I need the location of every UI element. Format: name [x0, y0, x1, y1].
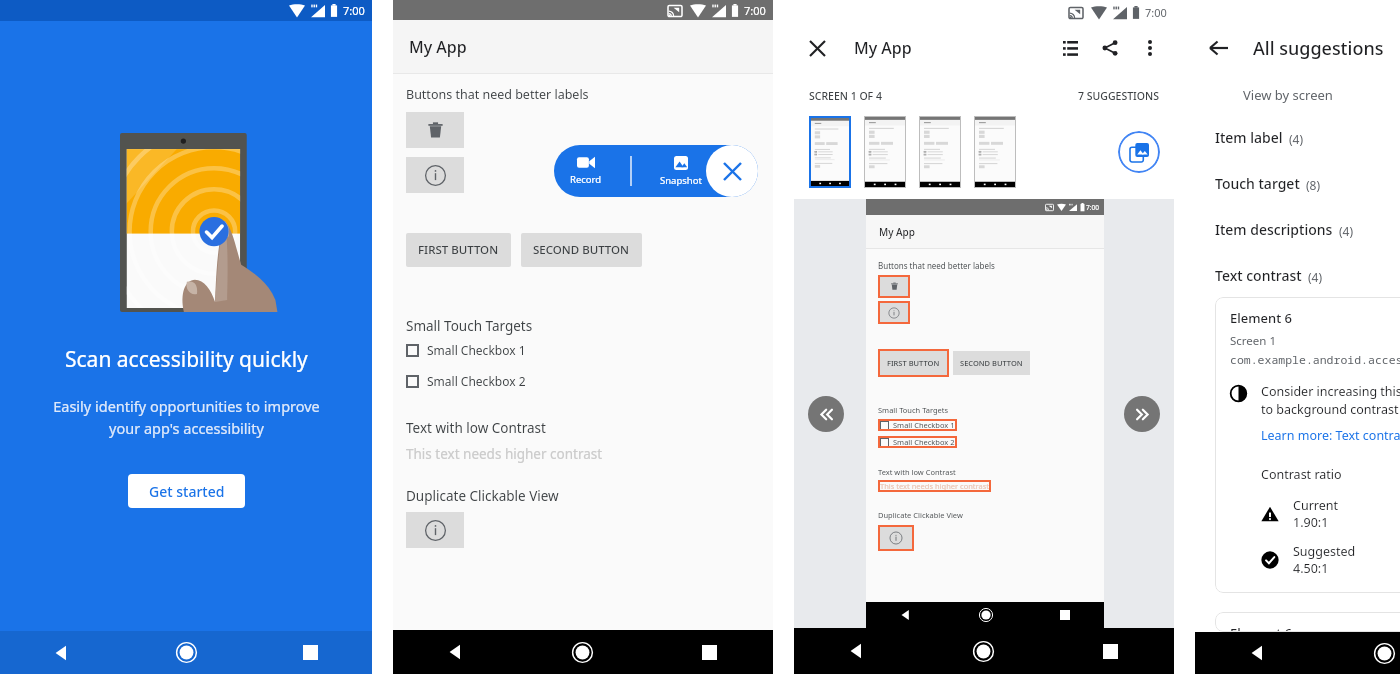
staticText: My App	[879, 225, 916, 239]
staticText: FIRST BUTTON	[418, 242, 499, 258]
staticText: com.example.android.accessibility	[1230, 352, 1400, 368]
staticText: All suggestions	[1253, 36, 1384, 61]
staticText: Contrast ratio	[1261, 466, 1342, 483]
staticText: (4)	[1289, 131, 1304, 147]
button[interactable]: Recents	[1047, 628, 1174, 674]
button[interactable]: Small Checkbox 1	[406, 342, 526, 358]
staticText: Small Checkbox 1	[427, 342, 526, 358]
staticText: Small Touch Targets	[878, 405, 949, 415]
staticText: Touch target	[1215, 174, 1300, 193]
button[interactable]: Share	[1090, 28, 1130, 68]
staticText: Text with low Contrast	[878, 467, 956, 477]
button[interactable]: Next	[1124, 396, 1160, 432]
button[interactable]: List view	[1050, 28, 1090, 68]
button[interactable]: Screen thumbnail	[809, 116, 851, 188]
button[interactable]: Home	[946, 602, 1025, 628]
staticText: Small Touch Targets	[406, 317, 533, 335]
button[interactable]: Action	[406, 512, 464, 548]
staticText: Snapshot	[660, 174, 702, 187]
button[interactable]: More options	[1130, 28, 1170, 68]
button[interactable]: Small Checkbox 2	[406, 373, 526, 389]
button[interactable]: Back	[1195, 632, 1321, 674]
staticText: 1.90:1	[1293, 514, 1329, 531]
staticText: 4.50:1	[1293, 560, 1329, 577]
button[interactable]: Home	[124, 631, 248, 674]
button[interactable]: Previous	[808, 396, 844, 432]
staticText: Learn more: Text contrast	[1261, 427, 1400, 444]
staticText: Text with low Contrast	[406, 419, 546, 437]
staticText: FIRST BUTTON	[887, 358, 940, 368]
staticText: This text needs higher contrast	[406, 445, 603, 463]
button[interactable]: Recents	[248, 631, 372, 674]
button[interactable]: Close	[706, 145, 758, 197]
button[interactable]: Gallery	[1118, 131, 1160, 173]
button[interactable]: Back	[866, 602, 946, 628]
staticText: Duplicate Clickable View	[878, 510, 963, 520]
button[interactable]: Back	[1195, 24, 1243, 72]
staticText: Item label	[1215, 128, 1283, 147]
staticText: 7:00	[343, 3, 365, 18]
staticText: Small Checkbox 2	[893, 437, 955, 447]
button[interactable]: Record	[554, 145, 758, 197]
staticText: Text contrast	[1215, 266, 1302, 285]
button[interactable]: Element 6	[1215, 612, 1400, 632]
button[interactable]: Action	[406, 157, 464, 193]
staticText: Current	[1293, 497, 1338, 514]
button[interactable]: SECOND BUTTON	[521, 233, 642, 267]
staticText: (4)	[1308, 269, 1323, 285]
button[interactable]: Recents	[1025, 602, 1104, 628]
button[interactable]: View by screen	[1243, 86, 1333, 104]
button[interactable]: Back	[794, 628, 920, 674]
staticText: My App	[409, 36, 467, 58]
button[interactable]: Text contrast	[1195, 266, 1400, 285]
staticText: My App	[854, 37, 912, 59]
staticText: SECOND BUTTON	[960, 358, 1023, 368]
staticText: 7:00	[1145, 5, 1167, 20]
staticText: Element 6	[1230, 309, 1292, 327]
button[interactable]: Element 6	[1215, 297, 1400, 593]
staticText: SECOND BUTTON	[533, 242, 630, 258]
staticText: Small Checkbox 2	[427, 373, 526, 389]
staticText: Consider increasing this item's text to …	[1261, 383, 1400, 418]
button[interactable]: Get started	[128, 474, 245, 508]
staticText: (4)	[1339, 223, 1354, 239]
button[interactable]: Back	[393, 630, 519, 674]
staticText: 7:00	[744, 3, 766, 18]
button[interactable]: Item label	[1195, 128, 1400, 147]
staticText: Duplicate Clickable View	[406, 487, 559, 505]
button[interactable]: Recents	[646, 630, 773, 674]
button[interactable]: Screen thumbnail	[864, 116, 906, 188]
staticText: Small Checkbox 1	[893, 420, 955, 430]
button[interactable]: Close	[794, 25, 840, 71]
button[interactable]: Home	[920, 628, 1047, 674]
staticText: Suggested	[1293, 543, 1356, 560]
button[interactable]: Touch target	[1195, 174, 1400, 193]
button[interactable]: Action	[406, 112, 464, 148]
staticText: Item descriptions	[1215, 220, 1333, 239]
staticText: This text needs higher contrast	[880, 481, 989, 491]
button[interactable]: Item descriptions	[1195, 220, 1400, 239]
staticText: 7 SUGGESTIONS	[1078, 89, 1159, 103]
staticText: Get started	[149, 482, 225, 501]
staticText: Screen 1	[1230, 333, 1276, 349]
staticText: Element 6	[1230, 624, 1292, 632]
staticText: Scan accessibility quickly	[65, 345, 308, 374]
button[interactable]: Home	[519, 630, 646, 674]
staticText: (8)	[1306, 177, 1321, 193]
staticText: Buttons that need better labels	[406, 86, 589, 103]
button[interactable]: Screen thumbnail	[919, 116, 961, 188]
button[interactable]: Home	[1321, 632, 1400, 674]
button[interactable]: Screen thumbnail	[974, 116, 1016, 188]
button[interactable]: Back	[0, 631, 124, 674]
button[interactable]: FIRST BUTTON	[406, 233, 511, 267]
staticText: Record	[570, 173, 602, 186]
staticText: Buttons that need better labels	[878, 260, 995, 271]
staticText: SCREEN 1 OF 4	[809, 89, 882, 103]
staticText: Easily identify opportunities to improve…	[53, 396, 320, 438]
staticText: 7:00	[1086, 203, 1099, 212]
